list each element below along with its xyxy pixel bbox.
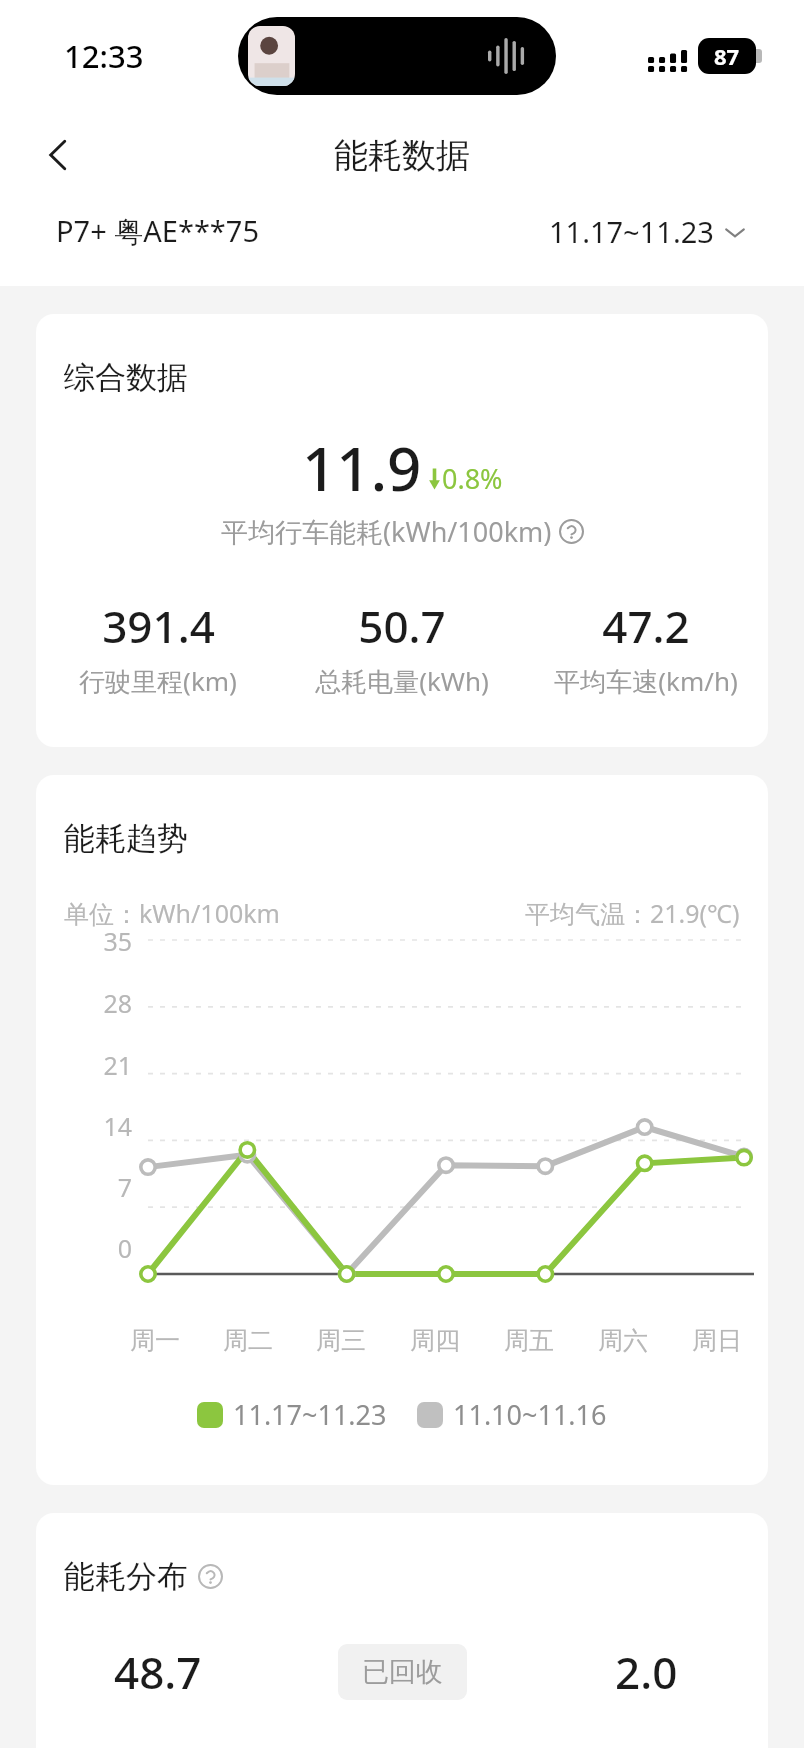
staticText: 周一 (130, 1325, 180, 1356)
button[interactable]: 已回收 (338, 1644, 467, 1700)
staticText: 48.7 (114, 1642, 202, 1702)
staticText: 周五 (504, 1325, 554, 1356)
staticText: 11.10~11.16 (453, 1396, 607, 1433)
staticText: 周四 (410, 1325, 460, 1356)
staticText: 35 (103, 924, 132, 958)
staticText: 11.9 (302, 427, 422, 509)
staticText: 47.2 (602, 596, 690, 656)
button[interactable]: 11.17~11.23 (197, 1396, 387, 1433)
staticText: 14 (103, 1109, 132, 1143)
staticText: 平均行车能耗(kWh/100km) (221, 513, 552, 550)
button[interactable]: 11.10~11.16 (417, 1396, 607, 1433)
staticText: 综合数据 (64, 358, 188, 397)
staticText: 12:33 (64, 35, 144, 77)
staticText: 28 (103, 986, 132, 1020)
staticText: 能耗趋势 (64, 819, 188, 858)
staticText: 能耗数据 (334, 134, 470, 177)
staticText: 行驶里程(km) (79, 663, 237, 699)
staticText: 391.4 (102, 596, 215, 656)
staticText: 总耗电量(kWh) (315, 663, 489, 699)
staticText: 能耗分布 (64, 1557, 188, 1596)
staticText: 7 (117, 1170, 132, 1204)
staticText: P7+ 粤AE***75 (56, 211, 260, 251)
staticText: 平均气温：21.9(℃) (525, 896, 740, 930)
staticText: 87 (714, 41, 740, 71)
button[interactable]: 11.17~11.23 (549, 212, 748, 251)
staticText: 11.17~11.23 (233, 1396, 387, 1433)
staticText: 11.17~11.23 (549, 212, 714, 251)
staticText: 周二 (223, 1325, 273, 1356)
staticText: 单位：kWh/100km (64, 896, 280, 930)
staticText: 50.7 (358, 596, 446, 656)
staticText: 21 (103, 1048, 132, 1082)
staticText: 0 (117, 1231, 132, 1265)
staticText: 已回收 (362, 1655, 443, 1689)
staticText: 平均车速(km/h) (554, 663, 738, 699)
staticText: 周六 (598, 1325, 648, 1356)
button[interactable]: Back (26, 122, 92, 188)
staticText: 周日 (692, 1325, 742, 1356)
staticText: 2.0 (615, 1642, 678, 1702)
staticText: 周三 (316, 1325, 366, 1356)
staticText: 0.8% (442, 460, 503, 497)
